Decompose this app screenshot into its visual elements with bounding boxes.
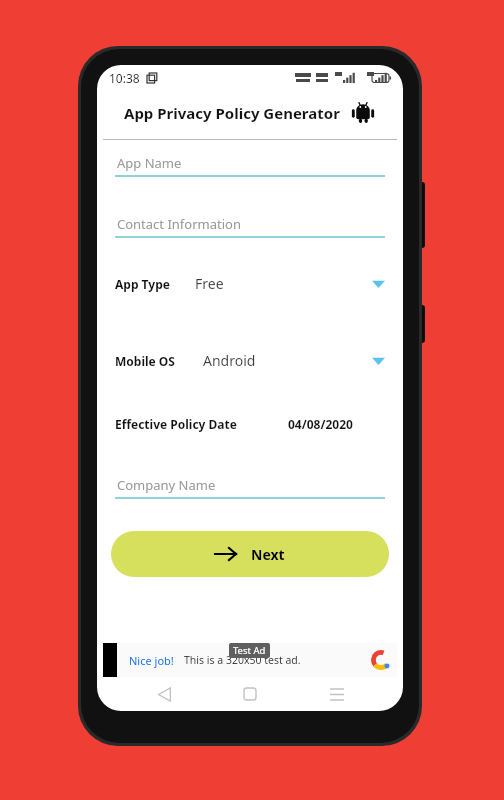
- button[interactable]: Home: [230, 677, 270, 711]
- button[interactable]: Next: [111, 531, 389, 577]
- staticText: Free: [195, 274, 224, 293]
- staticText: Company Name: [117, 476, 216, 494]
- button[interactable]: Company Name: [115, 476, 385, 499]
- staticText: Next: [251, 545, 285, 564]
- button[interactable]: Nice job!: [103, 643, 397, 677]
- button[interactable]: Back: [144, 677, 184, 711]
- button[interactable]: Effective Policy Date: [115, 416, 385, 432]
- staticText: This is a 320x50 test ad.: [184, 653, 301, 667]
- button[interactable]: Recent apps: [317, 677, 357, 711]
- staticText: Mobile OS: [115, 353, 175, 369]
- staticText: App Privacy Policy Generator: [124, 103, 340, 123]
- button[interactable]: Mobile OS: [115, 351, 385, 370]
- staticText: App Name: [117, 154, 182, 172]
- button[interactable]: App Type: [115, 274, 385, 293]
- staticText: Nice job!: [129, 653, 174, 668]
- button[interactable]: Contact Information: [115, 215, 385, 238]
- staticText: Test Ad: [233, 644, 266, 657]
- staticText: 04/08/2020: [288, 416, 353, 432]
- staticText: 10:38: [109, 70, 140, 86]
- staticText: Contact Information: [117, 215, 241, 233]
- staticText: App Type: [115, 276, 170, 292]
- staticText: Effective Policy Date: [115, 416, 237, 432]
- staticText: Android: [203, 351, 256, 370]
- button[interactable]: App Name: [115, 154, 385, 177]
